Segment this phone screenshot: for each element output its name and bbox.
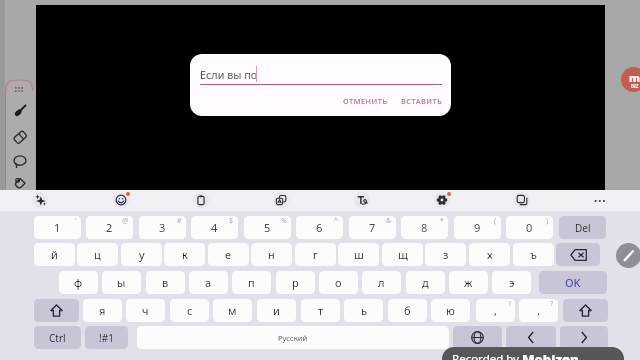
button[interactable]: 9	[454, 216, 501, 239]
staticText: ц	[94, 247, 101, 262]
button[interactable]: 0	[506, 216, 553, 239]
staticText: ы	[117, 275, 126, 290]
button[interactable]: з	[425, 243, 466, 266]
button[interactable]: Backspace	[556, 243, 600, 266]
button[interactable]: OK	[539, 271, 607, 294]
staticText: 3	[159, 220, 166, 235]
button[interactable]: Brush	[14, 104, 27, 117]
button[interactable]: в	[146, 271, 185, 294]
button[interactable]: э	[492, 271, 531, 294]
button[interactable]: й	[34, 243, 75, 266]
staticText: Если вы по	[200, 67, 258, 82]
button[interactable]: л	[362, 271, 401, 294]
button[interactable]: ю	[431, 299, 470, 322]
button[interactable]: 2	[86, 216, 133, 239]
button[interactable]: Magic	[32, 192, 48, 208]
button[interactable]: Eraser	[13, 130, 27, 144]
button[interactable]: ь	[344, 299, 383, 322]
button[interactable]: Change language	[453, 326, 502, 349]
button[interactable]: г	[295, 243, 336, 266]
staticText: г	[313, 247, 318, 262]
button[interactable]: е	[208, 243, 249, 266]
button[interactable]: х	[469, 243, 510, 266]
staticText: 9	[474, 220, 481, 235]
button[interactable]: Handwriting	[354, 192, 370, 208]
button[interactable]: 4	[191, 216, 238, 239]
button[interactable]: д	[406, 271, 445, 294]
staticText: ВСТАВИТЬ	[401, 96, 443, 106]
button[interactable]: ч	[126, 299, 165, 322]
button[interactable]: Layers	[514, 192, 530, 208]
staticText: р	[292, 275, 299, 290]
staticText: 2	[106, 220, 113, 235]
button[interactable]: т	[301, 299, 340, 322]
staticText: Recorded by	[452, 351, 522, 360]
button[interactable]: с	[170, 299, 209, 322]
staticText: '	[75, 216, 77, 226]
staticText: m	[629, 70, 640, 85]
button[interactable]: и	[257, 299, 296, 322]
button[interactable]: !#1	[85, 326, 128, 349]
button[interactable]: р	[276, 271, 315, 294]
button[interactable]: б	[388, 299, 427, 322]
button[interactable]: Ctrl	[34, 326, 81, 349]
button[interactable]: ы	[102, 271, 141, 294]
staticText: у	[139, 247, 145, 262]
button[interactable]: щ	[382, 243, 423, 266]
staticText: ш	[354, 247, 364, 262]
button[interactable]: Translate	[273, 192, 289, 208]
button[interactable]: к	[164, 243, 205, 266]
button[interactable]: 1	[34, 216, 81, 239]
button[interactable]: Fill	[13, 176, 27, 190]
button[interactable]: ф	[59, 271, 98, 294]
button[interactable]: ъ	[513, 243, 554, 266]
button[interactable]: ОТМЕНИТЬ	[337, 93, 393, 109]
button[interactable]: ж	[449, 271, 488, 294]
button[interactable]: 3	[139, 216, 186, 239]
button[interactable]: More options	[593, 194, 607, 208]
staticText: %	[281, 216, 287, 226]
button[interactable]: н	[251, 243, 292, 266]
button[interactable]: Русский	[137, 326, 449, 349]
button[interactable]: ,	[476, 299, 515, 322]
button[interactable]: Settings	[434, 192, 450, 208]
staticText: ч	[142, 303, 149, 318]
button[interactable]: 5	[244, 216, 291, 239]
button[interactable]: Previous	[506, 326, 556, 349]
button[interactable]: .	[519, 299, 558, 322]
staticText: 4	[211, 220, 218, 235]
button[interactable]: Next	[560, 326, 608, 349]
staticText: н	[268, 247, 275, 262]
button[interactable]: 8	[401, 216, 448, 239]
button[interactable]: 6	[296, 216, 343, 239]
button[interactable]: Clipboard	[193, 192, 209, 208]
button[interactable]: м	[213, 299, 252, 322]
button[interactable]: о	[319, 271, 358, 294]
staticText: я	[99, 303, 106, 318]
staticText: й	[51, 247, 58, 262]
button[interactable]: ш	[338, 243, 379, 266]
button[interactable]: Shift	[563, 299, 608, 322]
button[interactable]: Shift	[34, 299, 79, 322]
button[interactable]: ВСТАВИТЬ	[395, 93, 448, 109]
staticText: (	[494, 216, 497, 226]
staticText: #	[177, 216, 182, 226]
staticText: в	[162, 275, 169, 290]
button[interactable]: я	[83, 299, 122, 322]
staticText: а	[205, 275, 212, 290]
staticText: Русский	[278, 333, 308, 343]
button[interactable]: у	[121, 243, 162, 266]
button[interactable]: ц	[77, 243, 118, 266]
staticText: п	[248, 275, 255, 290]
staticText: 8	[421, 220, 428, 235]
button[interactable]: Del	[559, 216, 606, 239]
button[interactable]: Pen	[616, 243, 640, 268]
staticText: Ctrl	[49, 331, 66, 345]
button[interactable]: а	[189, 271, 228, 294]
staticText: к	[182, 247, 188, 262]
staticText: ъ	[530, 247, 537, 262]
button[interactable]: п	[232, 271, 271, 294]
button[interactable]: Emoji	[113, 192, 129, 208]
button[interactable]: Lasso	[13, 155, 27, 169]
button[interactable]: 7	[349, 216, 396, 239]
